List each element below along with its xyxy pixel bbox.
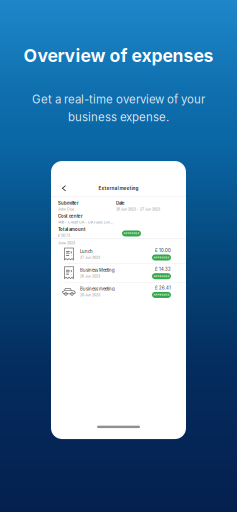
staticText: business expense. [68, 110, 169, 124]
staticText: £ 14.32 [155, 267, 171, 272]
staticText: Submitter [58, 200, 79, 206]
staticText: Total amount [58, 227, 86, 232]
staticText: Business Meeting [80, 268, 115, 273]
staticText: APPROVED [153, 293, 169, 296]
button[interactable]: Back [58, 182, 70, 194]
staticText: £ 10.00 [155, 248, 171, 253]
button[interactable]: Lunch [51, 245, 186, 263]
staticText: Lunch [80, 249, 93, 254]
staticText: John Doe [58, 207, 74, 211]
staticText: 26 Jun 2023 - 27 Jun 2023 [116, 207, 160, 211]
staticText: £ 50.73 [58, 233, 70, 238]
staticText: £ 26.41 [155, 285, 171, 291]
staticText: Date [116, 200, 125, 206]
staticText: Overview of expenses [23, 45, 213, 66]
staticText: 26 Jun 2023 [80, 274, 100, 278]
staticText: 27 Jun 2023 [80, 255, 100, 260]
staticText: APPROVED [153, 275, 169, 278]
staticText: 1418 - Credit UK - UK Fuels Lim... [58, 220, 113, 224]
staticText: Cost center [58, 214, 83, 219]
staticText: APPROVED [123, 232, 139, 235]
staticText: APPROVED [153, 256, 169, 259]
staticText: External meeting [98, 185, 138, 191]
staticText: 20 Jun 2023 [80, 293, 100, 297]
staticText: June 2023 [58, 241, 75, 245]
staticText: Get a real-time overview of your [32, 92, 205, 106]
staticText: Business meeting [80, 286, 115, 291]
button[interactable]: Business meeting [51, 282, 186, 301]
button[interactable]: Business Meeting [51, 264, 186, 282]
